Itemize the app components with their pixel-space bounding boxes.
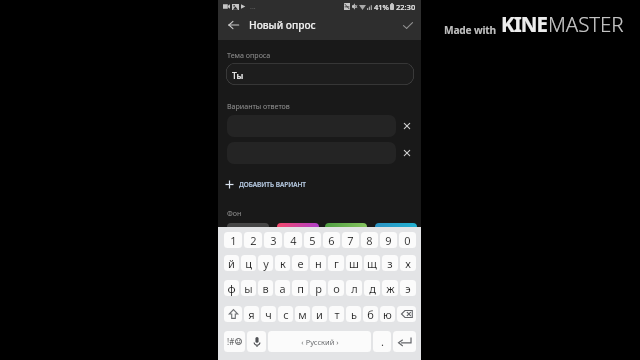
staticText: д xyxy=(369,281,376,296)
button[interactable] xyxy=(393,331,416,352)
button[interactable]: Ты xyxy=(226,63,414,85)
staticText: ю xyxy=(383,307,392,322)
staticText: 7 xyxy=(347,233,354,248)
button[interactable]: а xyxy=(275,280,290,296)
button[interactable]: Фон xyxy=(325,223,367,243)
button[interactable]: ш xyxy=(346,255,362,271)
button[interactable]: э xyxy=(400,280,416,296)
staticText: Новый опрос xyxy=(249,18,316,32)
button[interactable]: Готово xyxy=(398,15,418,35)
button[interactable]: 1 xyxy=(224,232,242,248)
button[interactable]: ы xyxy=(241,280,256,296)
button[interactable]: ‹ Русский › xyxy=(268,331,371,352)
button[interactable]: у xyxy=(258,255,273,271)
staticText: 5 xyxy=(309,233,316,248)
staticText: х xyxy=(405,256,411,271)
button[interactable]: я xyxy=(244,306,259,322)
button[interactable]: л xyxy=(346,280,362,296)
button[interactable] xyxy=(224,306,242,322)
button[interactable]: ж xyxy=(382,280,398,296)
button[interactable]: х xyxy=(400,255,416,271)
button[interactable]: з xyxy=(382,255,398,271)
button[interactable]: м xyxy=(295,306,310,322)
button[interactable]: п xyxy=(292,280,308,296)
staticText: 9 xyxy=(385,233,392,248)
staticText: с xyxy=(283,307,289,322)
staticText: 22:30 xyxy=(396,2,416,11)
button[interactable]: б xyxy=(363,306,378,322)
button[interactable]: щ xyxy=(364,255,380,271)
button[interactable]: ь xyxy=(346,306,361,322)
button[interactable]: й xyxy=(224,255,239,271)
button[interactable]: 0 xyxy=(399,232,416,248)
staticText: Made with xyxy=(444,23,496,37)
staticText: 8 xyxy=(366,233,373,248)
button[interactable]: Фон xyxy=(277,223,319,243)
staticText: й xyxy=(228,256,235,271)
button[interactable] xyxy=(247,331,266,352)
button[interactable]: 5 xyxy=(304,232,321,248)
staticText: Ты xyxy=(232,70,244,82)
button[interactable]: с xyxy=(278,306,293,322)
staticText: ы xyxy=(244,281,253,296)
button[interactable]: 8 xyxy=(361,232,378,248)
button[interactable]: к xyxy=(275,255,290,271)
button[interactable]: . xyxy=(373,331,391,352)
staticText: ч xyxy=(265,307,272,322)
staticText: 6 xyxy=(328,233,335,248)
staticText: Тема опроса xyxy=(227,50,271,60)
staticText: ш xyxy=(349,256,359,271)
button[interactable]: ДОБАВИТЬ ВАРИАНТ xyxy=(225,177,306,191)
staticText: з xyxy=(387,256,393,271)
staticText: 4 xyxy=(290,233,297,248)
button[interactable]: 7 xyxy=(342,232,359,248)
staticText: е xyxy=(297,256,304,271)
button[interactable]: Фон xyxy=(375,223,417,243)
button[interactable]: ф xyxy=(224,280,239,296)
staticText: ‹ Русский › xyxy=(301,337,339,347)
staticText: я xyxy=(248,307,255,322)
staticText: н xyxy=(315,256,322,271)
button[interactable]: !# xyxy=(224,331,245,352)
button[interactable]: ю xyxy=(380,306,395,322)
button[interactable]: Удалить вариант xyxy=(400,119,414,133)
staticText: и xyxy=(316,307,323,322)
staticText: 1 xyxy=(230,233,237,248)
button[interactable]: 9 xyxy=(380,232,397,248)
button[interactable]: Фон xyxy=(227,223,269,243)
button[interactable]: о xyxy=(328,280,344,296)
button[interactable]: 6 xyxy=(323,232,340,248)
button[interactable]: н xyxy=(310,255,326,271)
staticText: м xyxy=(298,307,307,322)
button[interactable]: р xyxy=(310,280,326,296)
staticText: п xyxy=(297,281,304,296)
staticText: ж xyxy=(386,281,395,296)
button[interactable]: д xyxy=(364,280,380,296)
button[interactable]: г xyxy=(328,255,344,271)
staticText: ф xyxy=(227,281,236,296)
staticText: 2 xyxy=(250,233,257,248)
button[interactable]: ч xyxy=(261,306,276,322)
button[interactable]: Удалить вариант xyxy=(400,146,414,160)
staticText: !# xyxy=(227,336,235,347)
staticText: ь xyxy=(351,307,357,322)
button[interactable]: 2 xyxy=(244,232,262,248)
button[interactable]: ц xyxy=(241,255,256,271)
staticText: Фон xyxy=(227,208,242,218)
button[interactable]: 4 xyxy=(284,232,302,248)
staticText: а xyxy=(279,281,286,296)
button[interactable]: Назад xyxy=(223,15,243,35)
staticText: у xyxy=(263,256,269,271)
button[interactable]: 3 xyxy=(264,232,282,248)
staticText: л xyxy=(351,281,358,296)
button[interactable]: е xyxy=(292,255,308,271)
staticText: KINE xyxy=(501,10,548,38)
button[interactable] xyxy=(397,306,416,322)
staticText: ДОБАВИТЬ ВАРИАНТ xyxy=(239,180,306,189)
button[interactable]: и xyxy=(312,306,327,322)
button[interactable]: т xyxy=(329,306,344,322)
button[interactable]: в xyxy=(258,280,273,296)
staticText: 3 xyxy=(270,233,277,248)
